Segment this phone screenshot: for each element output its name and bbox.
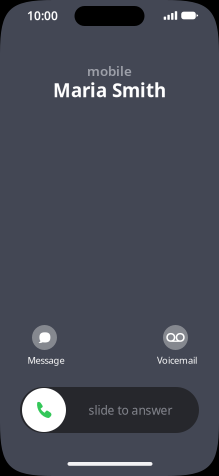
staticText: Maria Smith bbox=[53, 78, 166, 102]
staticText: Voicemail bbox=[157, 354, 197, 366]
staticText: Message bbox=[27, 354, 64, 366]
button[interactable]: slide to answer bbox=[20, 387, 199, 433]
button[interactable]: Message bbox=[9, 325, 79, 366]
staticText: slide to answer bbox=[88, 402, 172, 418]
button[interactable]: Voicemail bbox=[140, 325, 210, 366]
staticText: mobile bbox=[87, 62, 132, 80]
staticText: 10:00 bbox=[27, 7, 58, 23]
